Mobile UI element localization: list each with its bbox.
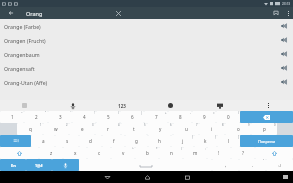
staticText: f <box>113 138 115 144</box>
button[interactable]: , <box>212 159 239 171</box>
staticText: v <box>122 150 125 156</box>
button[interactable]: Play pronunciation <box>275 61 293 75</box>
button[interactable]: Emoji <box>146 100 195 111</box>
button[interactable]: 123 <box>97 100 146 111</box>
button[interactable]: Back <box>87 171 127 183</box>
button[interactable]: h <box>148 135 171 147</box>
button[interactable]: Switch keyboard <box>277 171 293 183</box>
staticText: i <box>211 126 213 132</box>
button[interactable]: z <box>39 147 63 159</box>
staticText: d <box>89 138 92 144</box>
staticText: ^ <box>132 147 134 151</box>
button[interactable]: Play pronunciation <box>275 19 293 33</box>
staticText: , <box>225 162 227 168</box>
button[interactable]: 3 <box>48 111 72 123</box>
button[interactable]: . <box>239 159 266 171</box>
button[interactable]: More options <box>283 7 293 19</box>
button[interactable]: Bookmark <box>269 7 283 19</box>
button[interactable]: o <box>225 123 251 135</box>
button[interactable]: r <box>95 123 121 135</box>
button[interactable]: 2 <box>24 111 48 123</box>
staticText: ~ <box>21 111 23 115</box>
button[interactable]: f <box>102 135 125 147</box>
button[interactable]: Orangensaft <box>0 61 293 75</box>
button[interactable]: Keyboard settings <box>244 100 293 111</box>
button[interactable]: s <box>55 135 79 147</box>
button[interactable]: p <box>251 123 277 135</box>
button[interactable]: Clear <box>112 7 124 19</box>
button[interactable]: Voice input <box>52 159 79 171</box>
staticText: w <box>54 126 58 132</box>
button[interactable]: Back <box>0 7 22 19</box>
staticText: r <box>107 126 109 132</box>
button[interactable]: Play pronunciation <box>275 33 293 47</box>
staticText: 6 <box>170 123 172 127</box>
button[interactable]: l <box>217 135 240 147</box>
button[interactable]: Orange (Farbe) <box>0 19 293 33</box>
button[interactable]: 1@# <box>26 159 52 171</box>
button[interactable]: 1 <box>0 111 24 123</box>
staticText: 7 <box>155 114 158 120</box>
staticText: 8 <box>222 123 224 127</box>
staticText: :-) <box>278 163 282 168</box>
button[interactable]: q <box>17 123 43 135</box>
button[interactable]: Emoji <box>266 159 293 171</box>
button[interactable]: Shift <box>255 147 293 159</box>
staticText: Orang-Utan (Affe) <box>4 79 275 86</box>
button[interactable]: Space <box>79 159 212 171</box>
button[interactable]: Shift <box>0 147 39 159</box>
staticText: l <box>228 138 230 144</box>
button[interactable]: ? <box>231 147 255 159</box>
staticText: p <box>263 126 266 132</box>
button[interactable]: g <box>125 135 148 147</box>
button[interactable]: 9 <box>192 111 216 123</box>
button[interactable]: Покрени <box>240 135 293 147</box>
button[interactable]: Backspace <box>240 111 293 123</box>
button[interactable]: y <box>147 123 173 135</box>
staticText: 6 <box>131 114 134 120</box>
button[interactable]: b <box>135 147 159 159</box>
button[interactable]: Recent apps <box>167 171 207 183</box>
staticText: m <box>193 150 198 156</box>
staticText: \ <box>118 111 119 115</box>
button[interactable]: Orangen (Frucht) <box>0 33 293 47</box>
button[interactable]: u <box>173 123 199 135</box>
button[interactable]: e <box>69 123 95 135</box>
staticText: h <box>158 138 161 144</box>
staticText: 4 <box>83 114 86 120</box>
button[interactable]: 4 <box>72 111 96 123</box>
button[interactable]: j <box>171 135 194 147</box>
button[interactable]: Tab <box>0 135 31 147</box>
button[interactable]: ! <box>207 147 231 159</box>
button[interactable]: En <box>0 159 26 171</box>
button[interactable]: 8 <box>168 111 192 123</box>
button[interactable]: Play pronunciation <box>275 75 293 89</box>
button[interactable]: 6 <box>120 111 144 123</box>
button[interactable]: Orang-Utan (Affe) <box>0 75 293 89</box>
button[interactable]: Play pronunciation <box>275 47 293 61</box>
button[interactable]: Clipboard <box>0 100 48 111</box>
button[interactable]: t <box>121 123 147 135</box>
button[interactable]: k <box>194 135 217 147</box>
button[interactable]: 5 <box>96 111 120 123</box>
staticText: x <box>74 150 77 156</box>
staticText: - <box>190 111 191 115</box>
staticText: c <box>98 150 101 156</box>
button[interactable]: Translate <box>195 100 244 111</box>
button[interactable]: 0 <box>216 111 240 123</box>
button[interactable]: i <box>199 123 225 135</box>
button[interactable]: x <box>63 147 87 159</box>
button[interactable]: a <box>31 135 55 147</box>
button[interactable]: Home <box>127 171 167 183</box>
button[interactable]: Voice input <box>48 100 97 111</box>
button[interactable]: 7 <box>144 111 168 123</box>
button[interactable]: c <box>87 147 111 159</box>
staticText: 1 <box>40 123 42 127</box>
button[interactable]: w <box>43 123 69 135</box>
button[interactable]: d <box>79 135 102 147</box>
button[interactable]: n <box>159 147 183 159</box>
button[interactable]: Orangenbaum <box>0 47 293 61</box>
button[interactable]: m <box>183 147 207 159</box>
button[interactable]: v <box>111 147 135 159</box>
staticText: 9 <box>248 123 250 127</box>
